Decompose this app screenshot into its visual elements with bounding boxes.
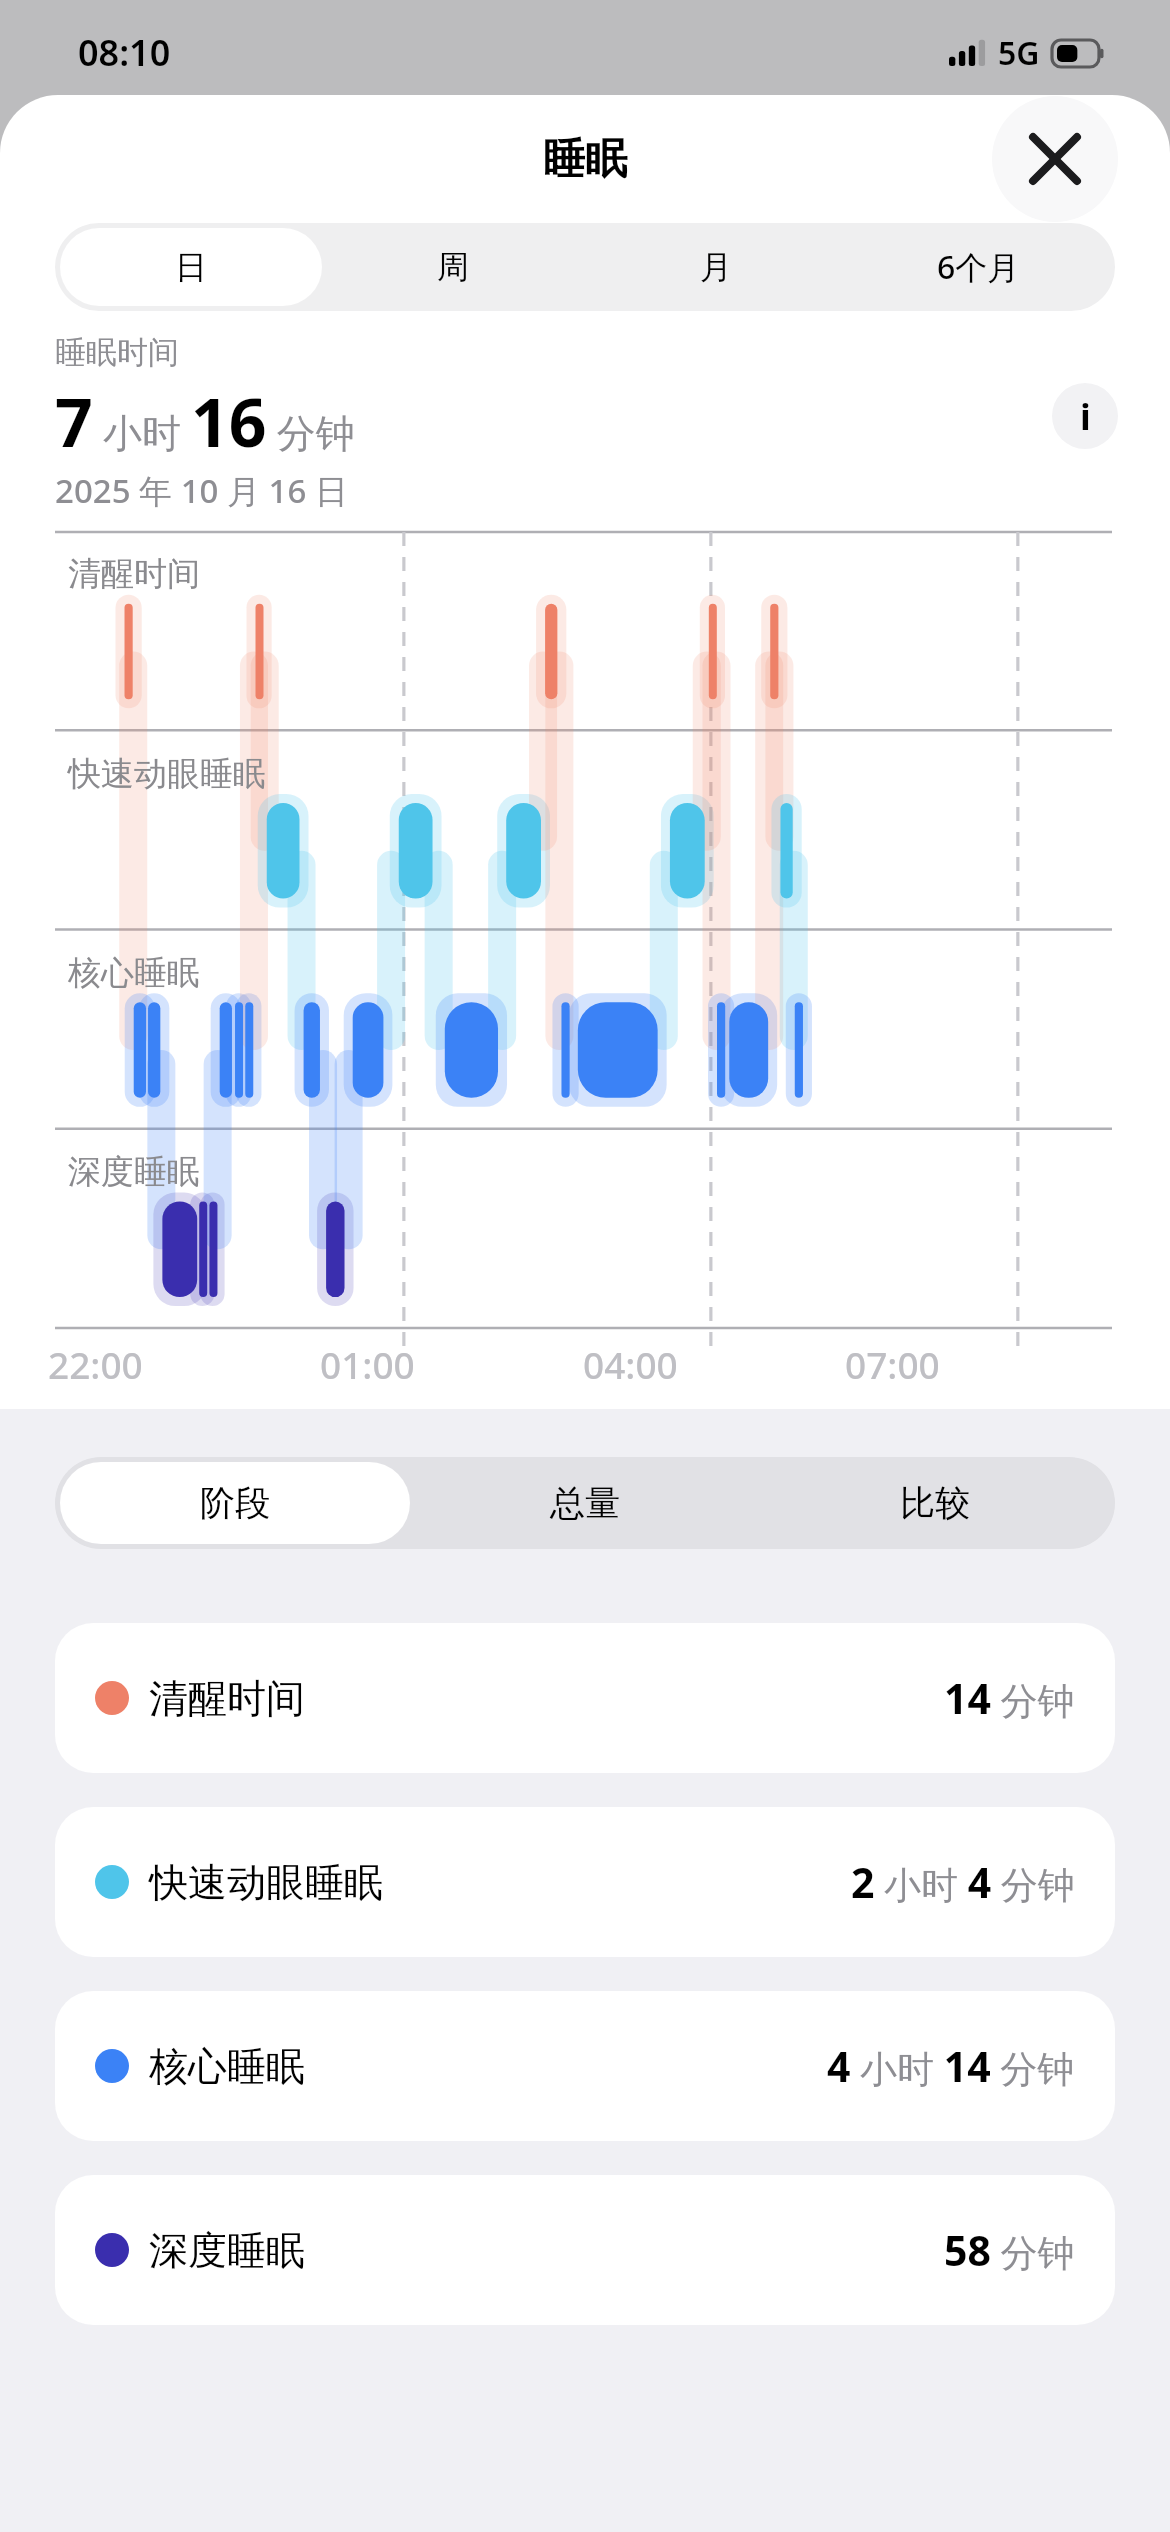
staticText: 08:10: [78, 28, 171, 77]
staticText: 核心睡眠: [149, 2042, 305, 2091]
button[interactable]: 周: [322, 228, 584, 306]
staticText: 日: [175, 247, 207, 287]
button[interactable]: 核心睡眠: [55, 1991, 1115, 2141]
button[interactable]: 总量: [410, 1462, 760, 1544]
staticText: 01:00: [320, 1339, 415, 1389]
staticText: 7 小时 16 分钟: [55, 376, 355, 466]
staticText: 快速动眼睡眠: [149, 1858, 383, 1907]
button[interactable]: 清醒时间: [55, 1623, 1115, 1773]
button[interactable]: 信息: [1052, 383, 1118, 449]
staticText: 睡眠: [543, 133, 627, 186]
staticText: 清醒时间: [68, 553, 200, 595]
button[interactable]: 快速动眼睡眠: [55, 1807, 1115, 1957]
staticText: 总量: [550, 1481, 620, 1525]
staticText: 月: [700, 247, 732, 287]
button[interactable]: 月: [584, 228, 847, 306]
staticText: 5G: [998, 31, 1040, 75]
staticText: 深度睡眠: [149, 2226, 305, 2275]
staticText: 58 分钟: [944, 2222, 1075, 2278]
staticText: 2025 年 10 月 16 日: [55, 468, 348, 513]
button[interactable]: 日: [60, 228, 322, 306]
staticText: 14 分钟: [944, 1670, 1075, 1726]
button[interactable]: 关闭: [992, 96, 1118, 222]
staticText: 清醒时间: [149, 1674, 305, 1723]
staticText: 6个月: [937, 245, 1020, 289]
button[interactable]: 阶段: [60, 1462, 410, 1544]
staticText: 深度睡眠: [68, 1151, 200, 1193]
staticText: 比较: [900, 1481, 970, 1525]
staticText: 阶段: [200, 1481, 270, 1525]
button[interactable]: 6个月: [847, 228, 1110, 306]
staticText: 4 小时 14 分钟: [827, 2038, 1075, 2094]
button[interactable]: 比较: [760, 1462, 1110, 1544]
staticText: 核心睡眠: [68, 952, 200, 994]
staticText: 04:00: [583, 1339, 678, 1389]
staticText: 2 小时 4 分钟: [851, 1854, 1075, 1910]
staticText: 周: [437, 247, 469, 287]
staticText: 快速动眼睡眠: [68, 753, 266, 795]
staticText: 睡眠时间: [55, 333, 179, 372]
button[interactable]: 深度睡眠: [55, 2175, 1115, 2325]
staticText: 22:00: [48, 1339, 143, 1389]
staticText: i: [1080, 392, 1091, 441]
staticText: 07:00: [845, 1339, 940, 1389]
